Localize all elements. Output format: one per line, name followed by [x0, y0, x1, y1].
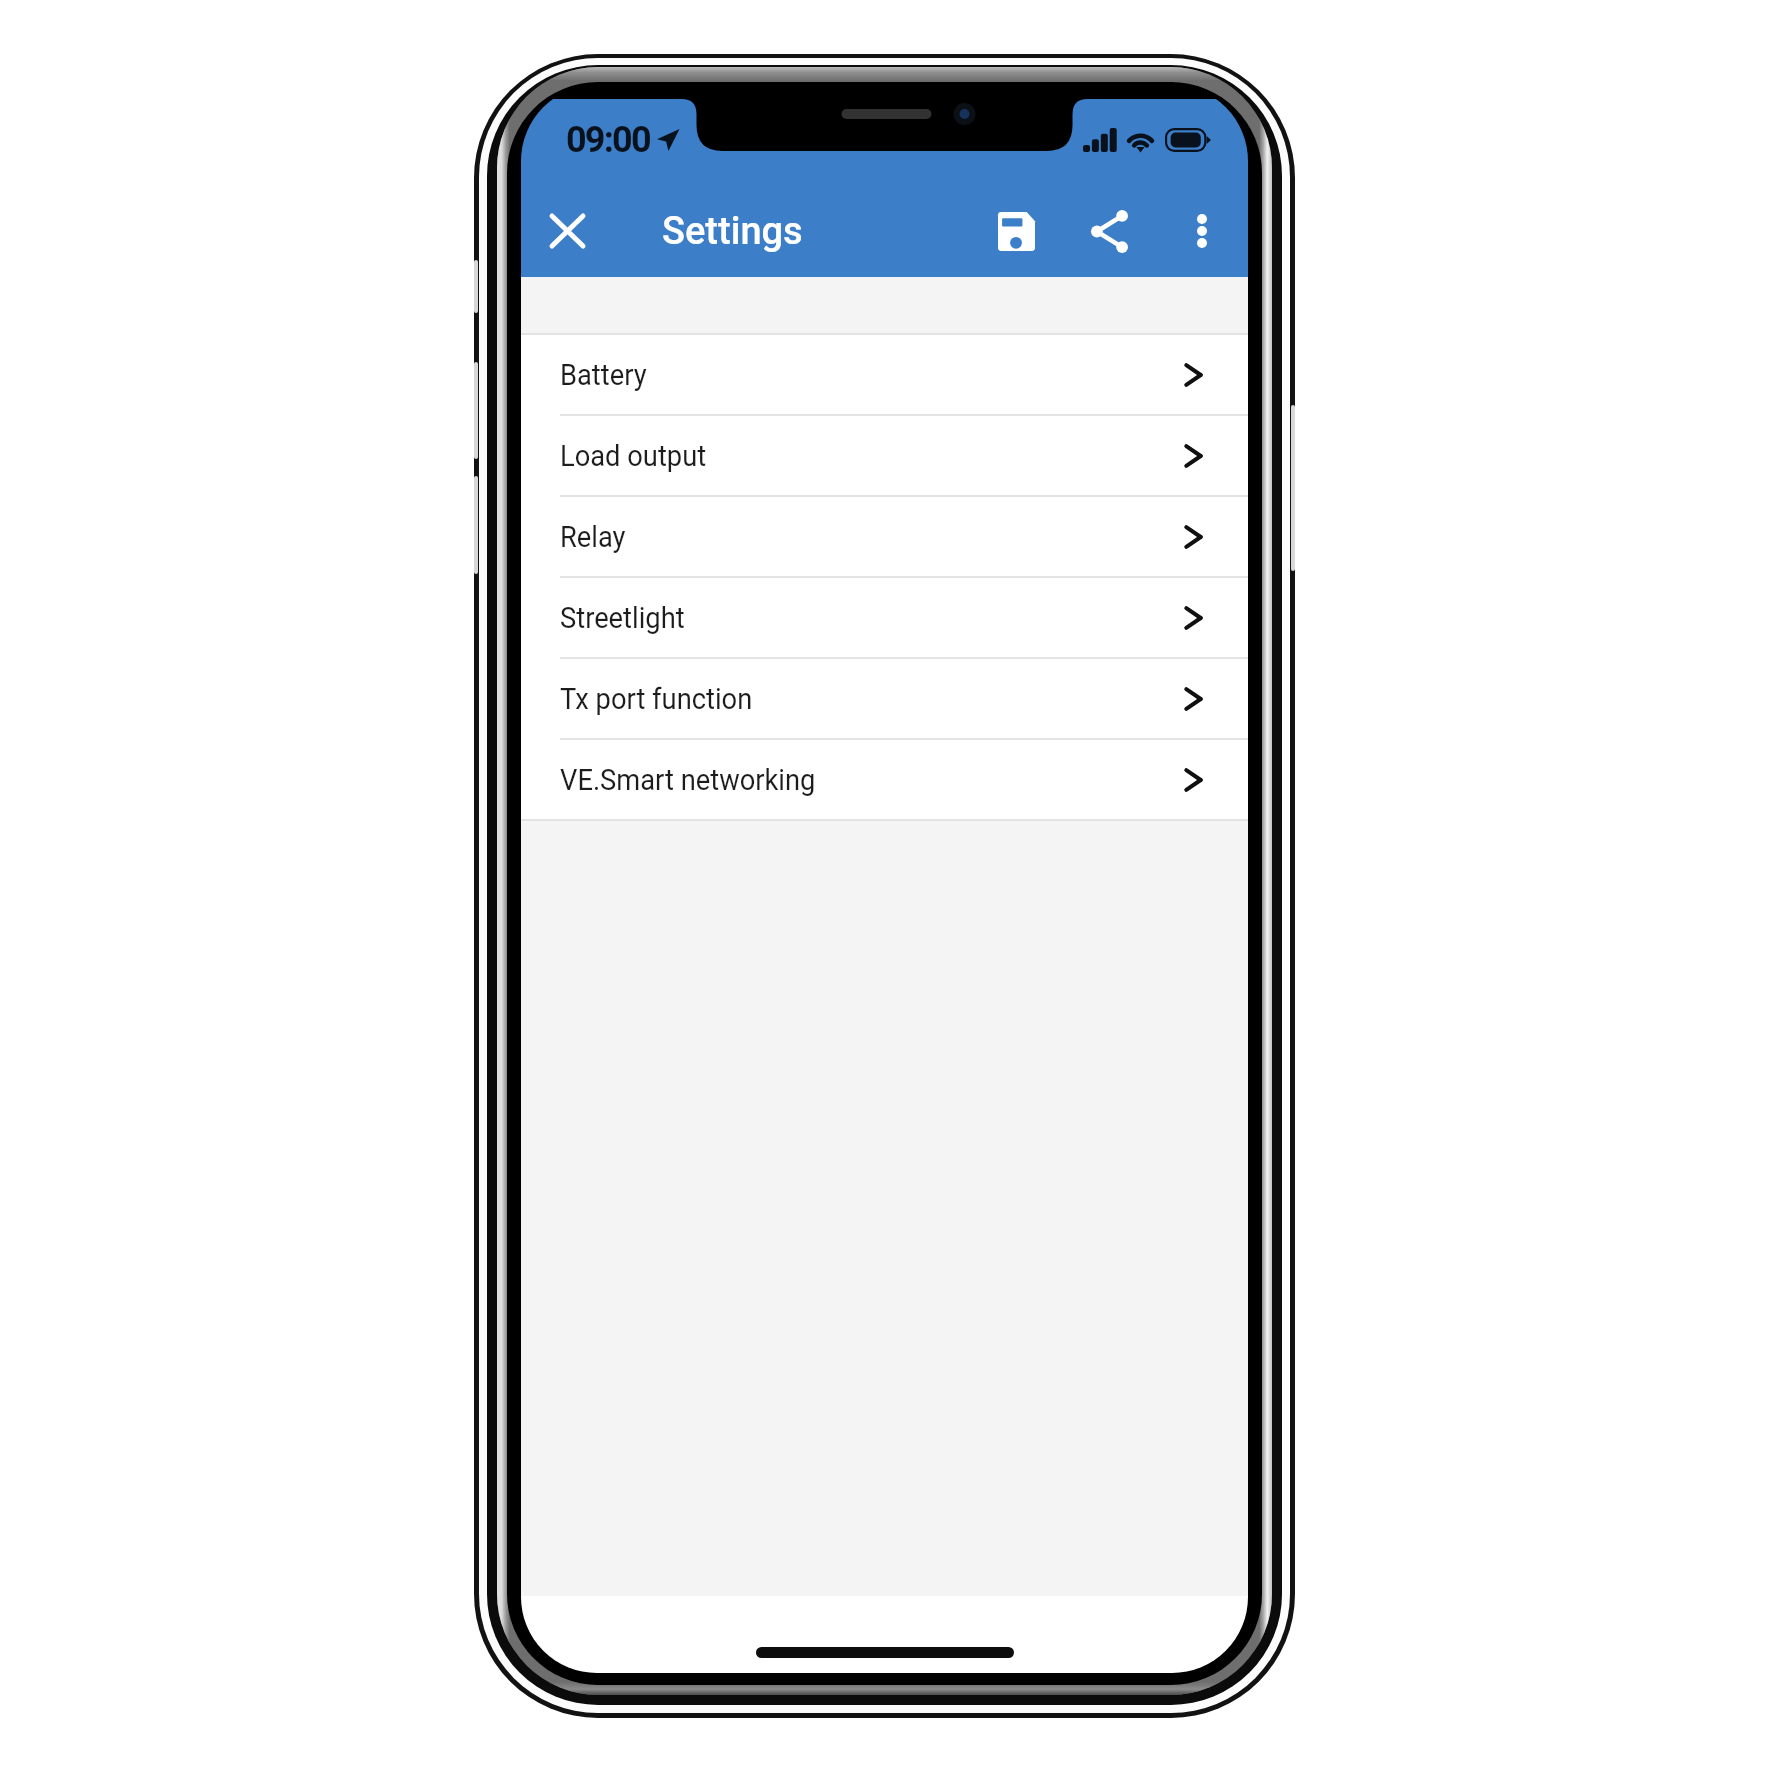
staticText: Load output	[560, 438, 706, 473]
button[interactable]: More options	[1172, 201, 1232, 261]
button[interactable]: Save	[984, 199, 1049, 264]
staticText: Settings	[662, 209, 803, 254]
button[interactable]: Close	[545, 208, 590, 253]
button[interactable]: Relay	[521, 497, 1248, 576]
staticText: 09:00	[566, 119, 650, 161]
staticText: Relay	[560, 519, 625, 554]
button[interactable]: Tx port function	[521, 659, 1248, 738]
staticText: VE.Smart networking	[560, 762, 816, 797]
button[interactable]: VE.Smart networking	[521, 740, 1248, 819]
staticText: Tx port function	[560, 681, 753, 716]
staticText: Streetlight	[560, 600, 685, 635]
button[interactable]: Battery	[521, 335, 1248, 414]
button[interactable]: Share	[1077, 199, 1142, 264]
button[interactable]: Load output	[521, 416, 1248, 495]
staticText: Battery	[560, 357, 647, 392]
button[interactable]: Streetlight	[521, 578, 1248, 657]
